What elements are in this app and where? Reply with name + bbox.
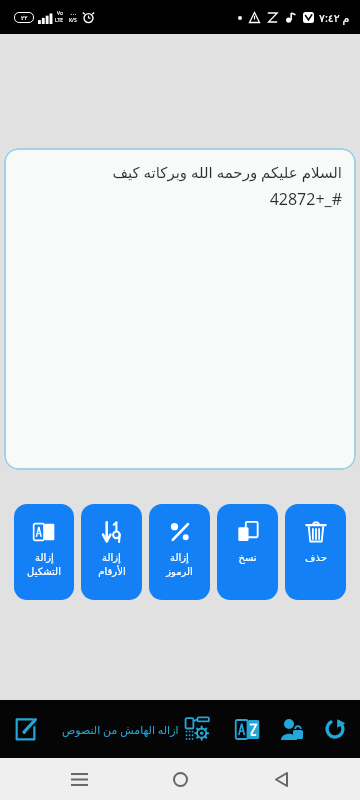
button[interactable]: السلام عليكم ورحمه الله وبركاته كيف	[4, 148, 356, 470]
button[interactable]: Remove diacritics	[14, 504, 74, 600]
button[interactable]: ازاله الهامش من النصوص	[46, 716, 226, 742]
staticText: التشكيل	[27, 566, 61, 578]
button[interactable]: Recent apps	[57, 758, 101, 800]
staticText: ⋯	[70, 10, 76, 17]
button[interactable]: Back	[259, 758, 303, 800]
button[interactable]: Reset	[314, 708, 356, 750]
staticText: السلام عليكم ورحمه الله وبركاته كيف	[112, 162, 342, 182]
staticText: إزالة	[102, 552, 121, 564]
staticText: الأرقام	[98, 566, 126, 578]
staticText: إزالة	[170, 552, 189, 564]
button[interactable]: Remove symbols	[149, 504, 210, 600]
staticText: K/S	[69, 17, 77, 24]
button[interactable]: Remove numbers	[81, 504, 142, 600]
staticText: ٢٢	[21, 14, 28, 21]
staticText: الرموز	[166, 566, 193, 578]
button[interactable]: Privacy	[270, 708, 312, 750]
button[interactable]: Delete	[285, 504, 346, 600]
staticText: Vo	[57, 10, 63, 17]
staticText: ازاله الهامش من النصوص	[62, 722, 179, 737]
button[interactable]: Copy	[217, 504, 278, 600]
button[interactable]: Home	[158, 758, 202, 800]
staticText: م ٧:٤٢	[319, 10, 350, 25]
staticText: 42872+_#	[269, 188, 342, 210]
button[interactable]: Edit text	[4, 708, 46, 750]
staticText: إزالة	[35, 552, 54, 564]
staticText: حذف	[305, 552, 327, 564]
button[interactable]: Translate	[226, 708, 268, 750]
staticText: LTE	[55, 17, 64, 24]
staticText: نسخ	[238, 552, 257, 564]
